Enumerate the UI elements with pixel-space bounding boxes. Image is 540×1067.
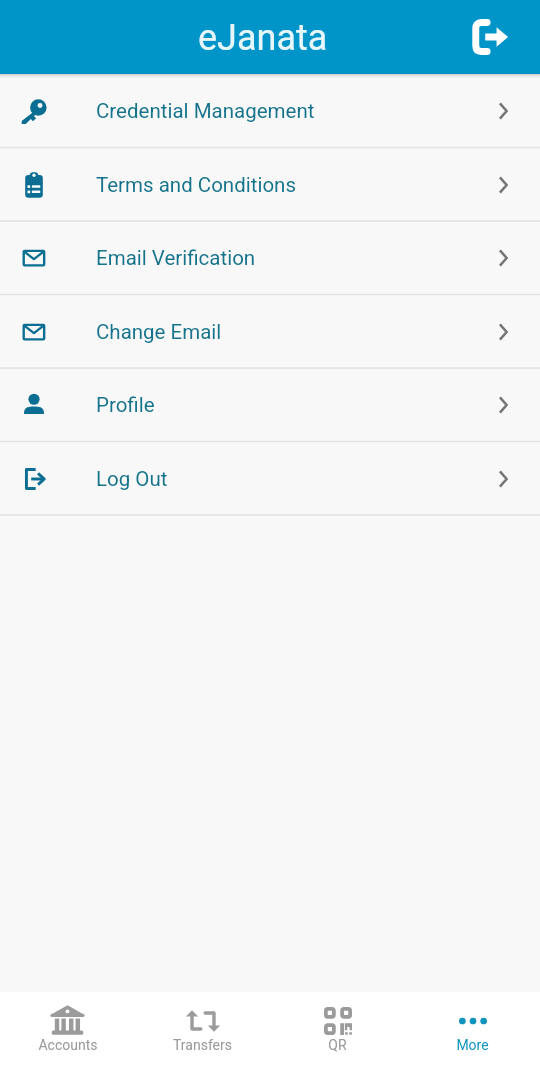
staticText: More xyxy=(456,1037,489,1053)
button[interactable]: Accounts xyxy=(0,992,135,1067)
staticText: Profile xyxy=(96,393,155,417)
staticText: Change Email xyxy=(96,320,222,344)
button[interactable]: QR xyxy=(270,992,405,1067)
staticText: Accounts xyxy=(38,1037,98,1053)
button[interactable]: Credential Management xyxy=(0,74,540,147)
button[interactable]: Log out xyxy=(473,10,527,64)
staticText: Transfers xyxy=(173,1037,232,1053)
staticText: Log Out xyxy=(96,467,168,491)
staticText: Email Verification xyxy=(96,246,256,270)
button[interactable]: Transfers xyxy=(135,992,270,1067)
button[interactable]: Log Out xyxy=(0,442,540,515)
button[interactable]: Change Email xyxy=(0,295,540,368)
staticText: Credential Management xyxy=(96,99,315,123)
button[interactable]: Email Verification xyxy=(0,221,540,294)
button[interactable]: Profile xyxy=(0,368,540,441)
staticText: QR xyxy=(328,1037,347,1053)
button[interactable]: More xyxy=(405,992,540,1067)
staticText: eJanata xyxy=(198,17,328,59)
button[interactable]: Terms and Conditions xyxy=(0,148,540,221)
staticText: Terms and Conditions xyxy=(96,173,297,197)
